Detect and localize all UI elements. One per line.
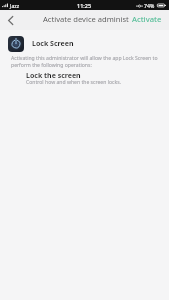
button[interactable]: Activate xyxy=(127,9,169,29)
staticText: Lock Screen xyxy=(32,39,74,49)
staticText: Jazz xyxy=(10,2,20,9)
staticText: 11:25 xyxy=(77,2,92,9)
staticText: 74% xyxy=(144,2,155,9)
button[interactable]: Back xyxy=(0,10,20,30)
staticText: Lock the screen xyxy=(26,71,81,81)
staticText: Control how and when the screen locks. xyxy=(26,79,122,86)
staticText: Activate xyxy=(132,14,162,24)
staticText: Activating this administrator will allow… xyxy=(11,55,163,68)
staticText: Activate device administrator xyxy=(43,14,129,24)
